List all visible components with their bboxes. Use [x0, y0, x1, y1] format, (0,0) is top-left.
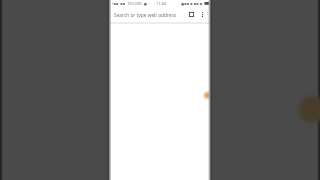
button[interactable]: Switch tabs: [185, 8, 198, 21]
staticText: 11:44: [156, 1, 166, 6]
button[interactable]: More options: [196, 8, 209, 21]
staticText: •▪▪ ·▪▪ 100.35% ● ··: [112, 1, 150, 6]
button[interactable]: Search or type web address: [109, 8, 185, 22]
staticText: ●▪▪·▪·▪▪·▪·: [181, 1, 204, 6]
staticText: Search or type web address: [114, 12, 177, 19]
